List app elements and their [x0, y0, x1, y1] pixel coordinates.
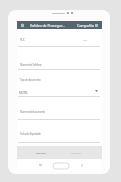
button[interactable]: Número de Teléfono [20, 63, 42, 67]
button[interactable]: Fecha de Expedición [20, 132, 41, 136]
staticText: Número de Teléfono [20, 63, 42, 67]
staticText: Compañía [77, 23, 94, 28]
staticText: RUC [20, 38, 25, 42]
staticText: Fecha de Expedición [20, 132, 41, 136]
staticText: VALIDAR [71, 151, 81, 154]
button[interactable]: LIMPIAR [27, 146, 55, 159]
button[interactable]: Recent apps [35, 160, 45, 170]
staticText: MOTIN [19, 91, 28, 95]
button[interactable]: Tipo de documento [20, 78, 41, 82]
staticText: LIMPIAR [36, 151, 46, 154]
button[interactable]: VALIDAR [62, 146, 90, 159]
staticText: Validez de Prosegur... [30, 23, 65, 28]
staticText: Tipo de documento [20, 78, 41, 82]
staticText: Número de documento [20, 110, 45, 114]
button[interactable]: Open navigation menu [17, 21, 27, 29]
button[interactable]: Home [52, 162, 69, 169]
button[interactable]: RUC [20, 38, 25, 42]
button[interactable]: Número de documento [20, 110, 45, 114]
button[interactable]: Back [77, 160, 87, 170]
button[interactable]: Compañía [77, 21, 102, 29]
staticText: 0/13 [83, 39, 88, 42]
